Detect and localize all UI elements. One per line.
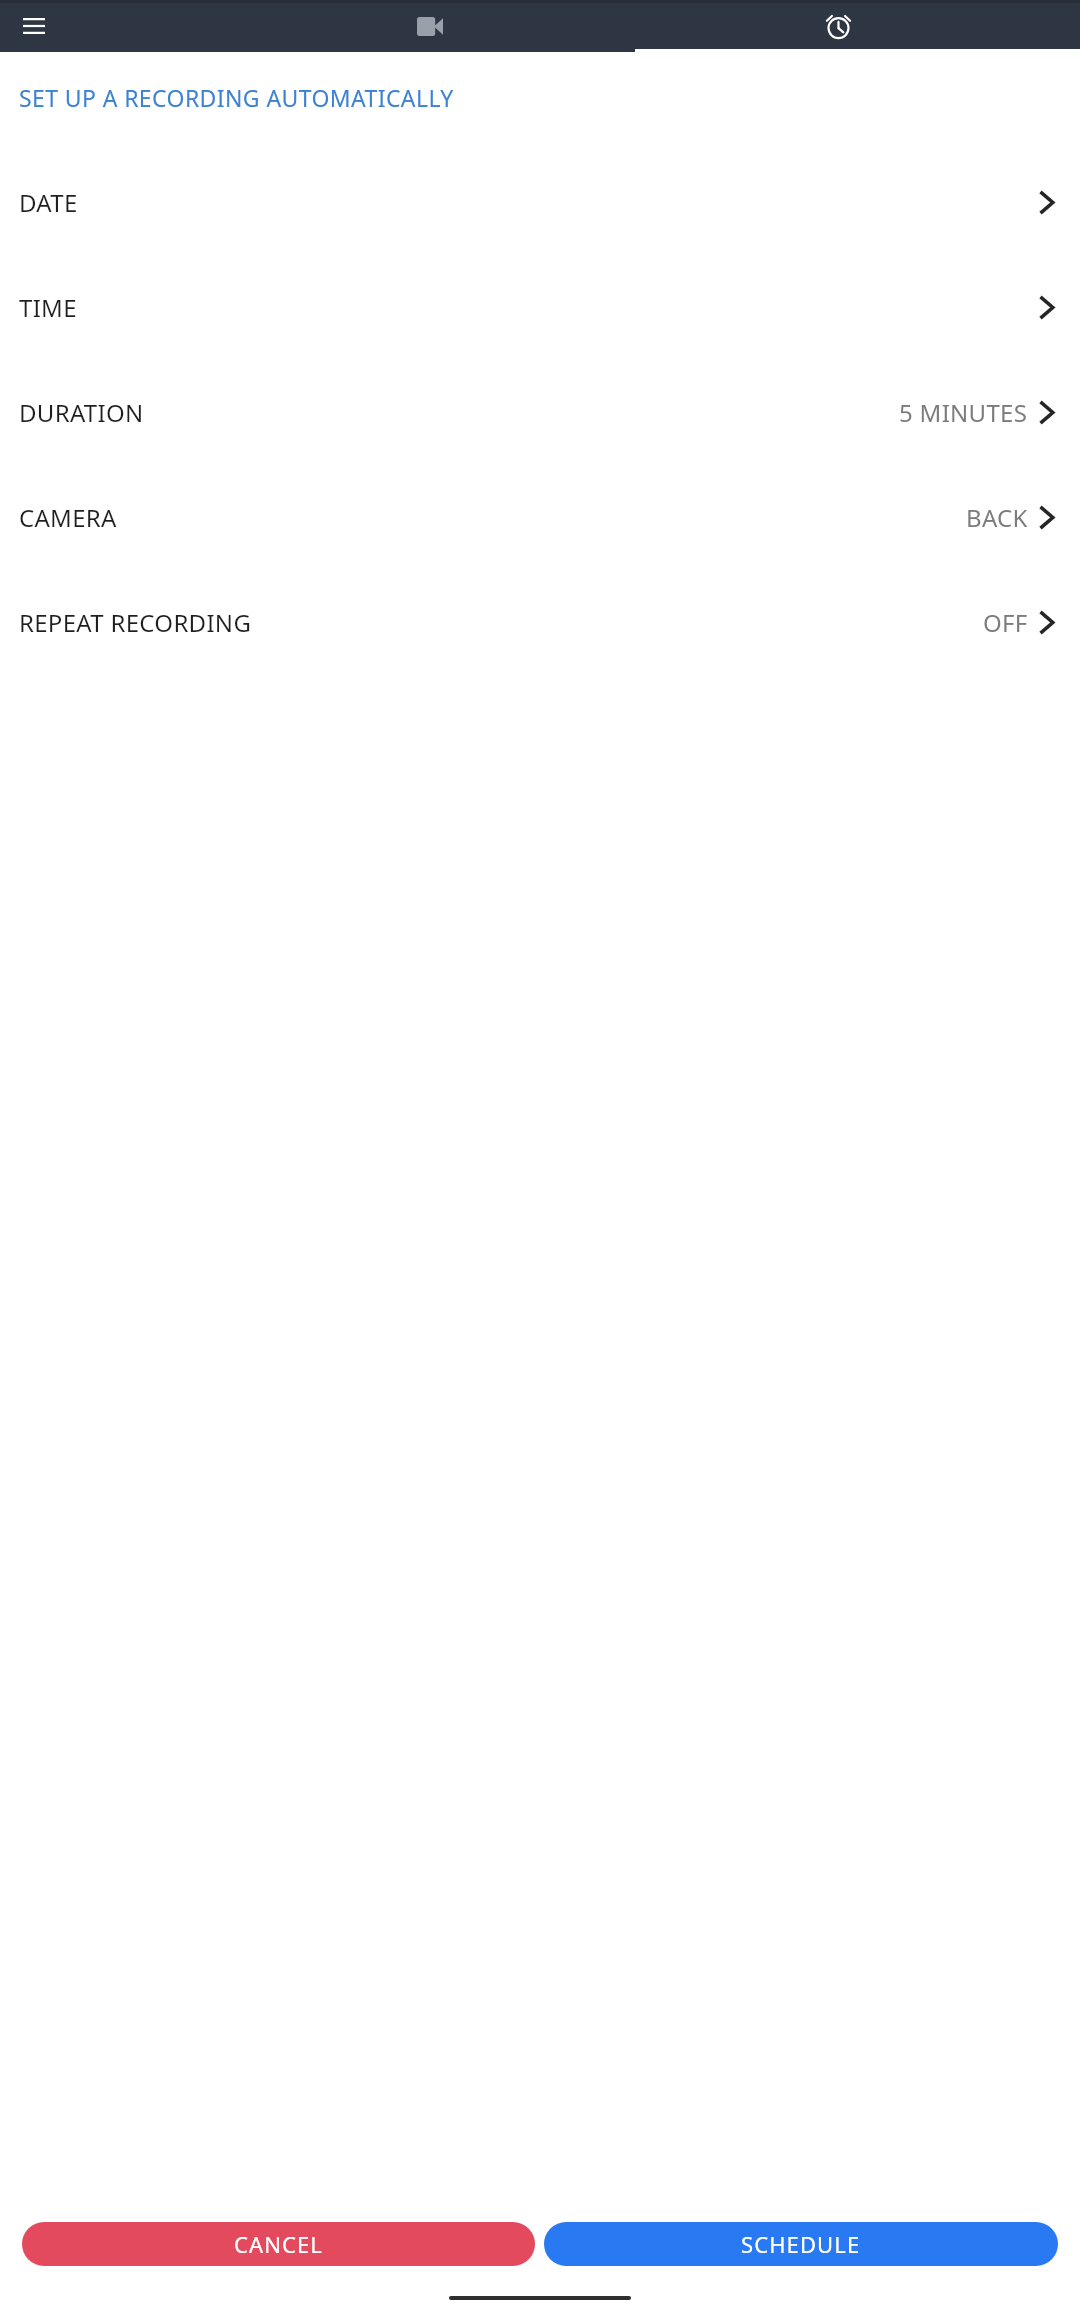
staticText: DATE <box>19 186 78 219</box>
button[interactable]: Menu <box>8 0 60 52</box>
button[interactable]: SCHEDULE <box>544 2222 1058 2266</box>
button[interactable]: DATE <box>0 150 1080 255</box>
staticText: SCHEDULE <box>741 2229 861 2259</box>
button[interactable]: Scheduled recording <box>808 0 868 52</box>
button[interactable]: CANCEL <box>22 2222 535 2266</box>
staticText: TIME <box>19 291 77 324</box>
staticText: 5 MINUTES <box>899 396 1028 429</box>
staticText: CANCEL <box>234 2229 323 2259</box>
staticText: OFF <box>983 606 1028 639</box>
staticText: DURATION <box>19 396 144 429</box>
staticText: BACK <box>966 501 1028 534</box>
button[interactable]: Video <box>400 0 460 52</box>
staticText: REPEAT RECORDING <box>19 606 252 639</box>
staticText: CAMERA <box>19 501 117 534</box>
button[interactable]: DURATION <box>0 360 1080 465</box>
button[interactable]: CAMERA <box>0 465 1080 570</box>
staticText: SET UP A RECORDING AUTOMATICALLY <box>19 82 454 113</box>
button[interactable]: TIME <box>0 255 1080 360</box>
button[interactable]: REPEAT RECORDING <box>0 570 1080 675</box>
